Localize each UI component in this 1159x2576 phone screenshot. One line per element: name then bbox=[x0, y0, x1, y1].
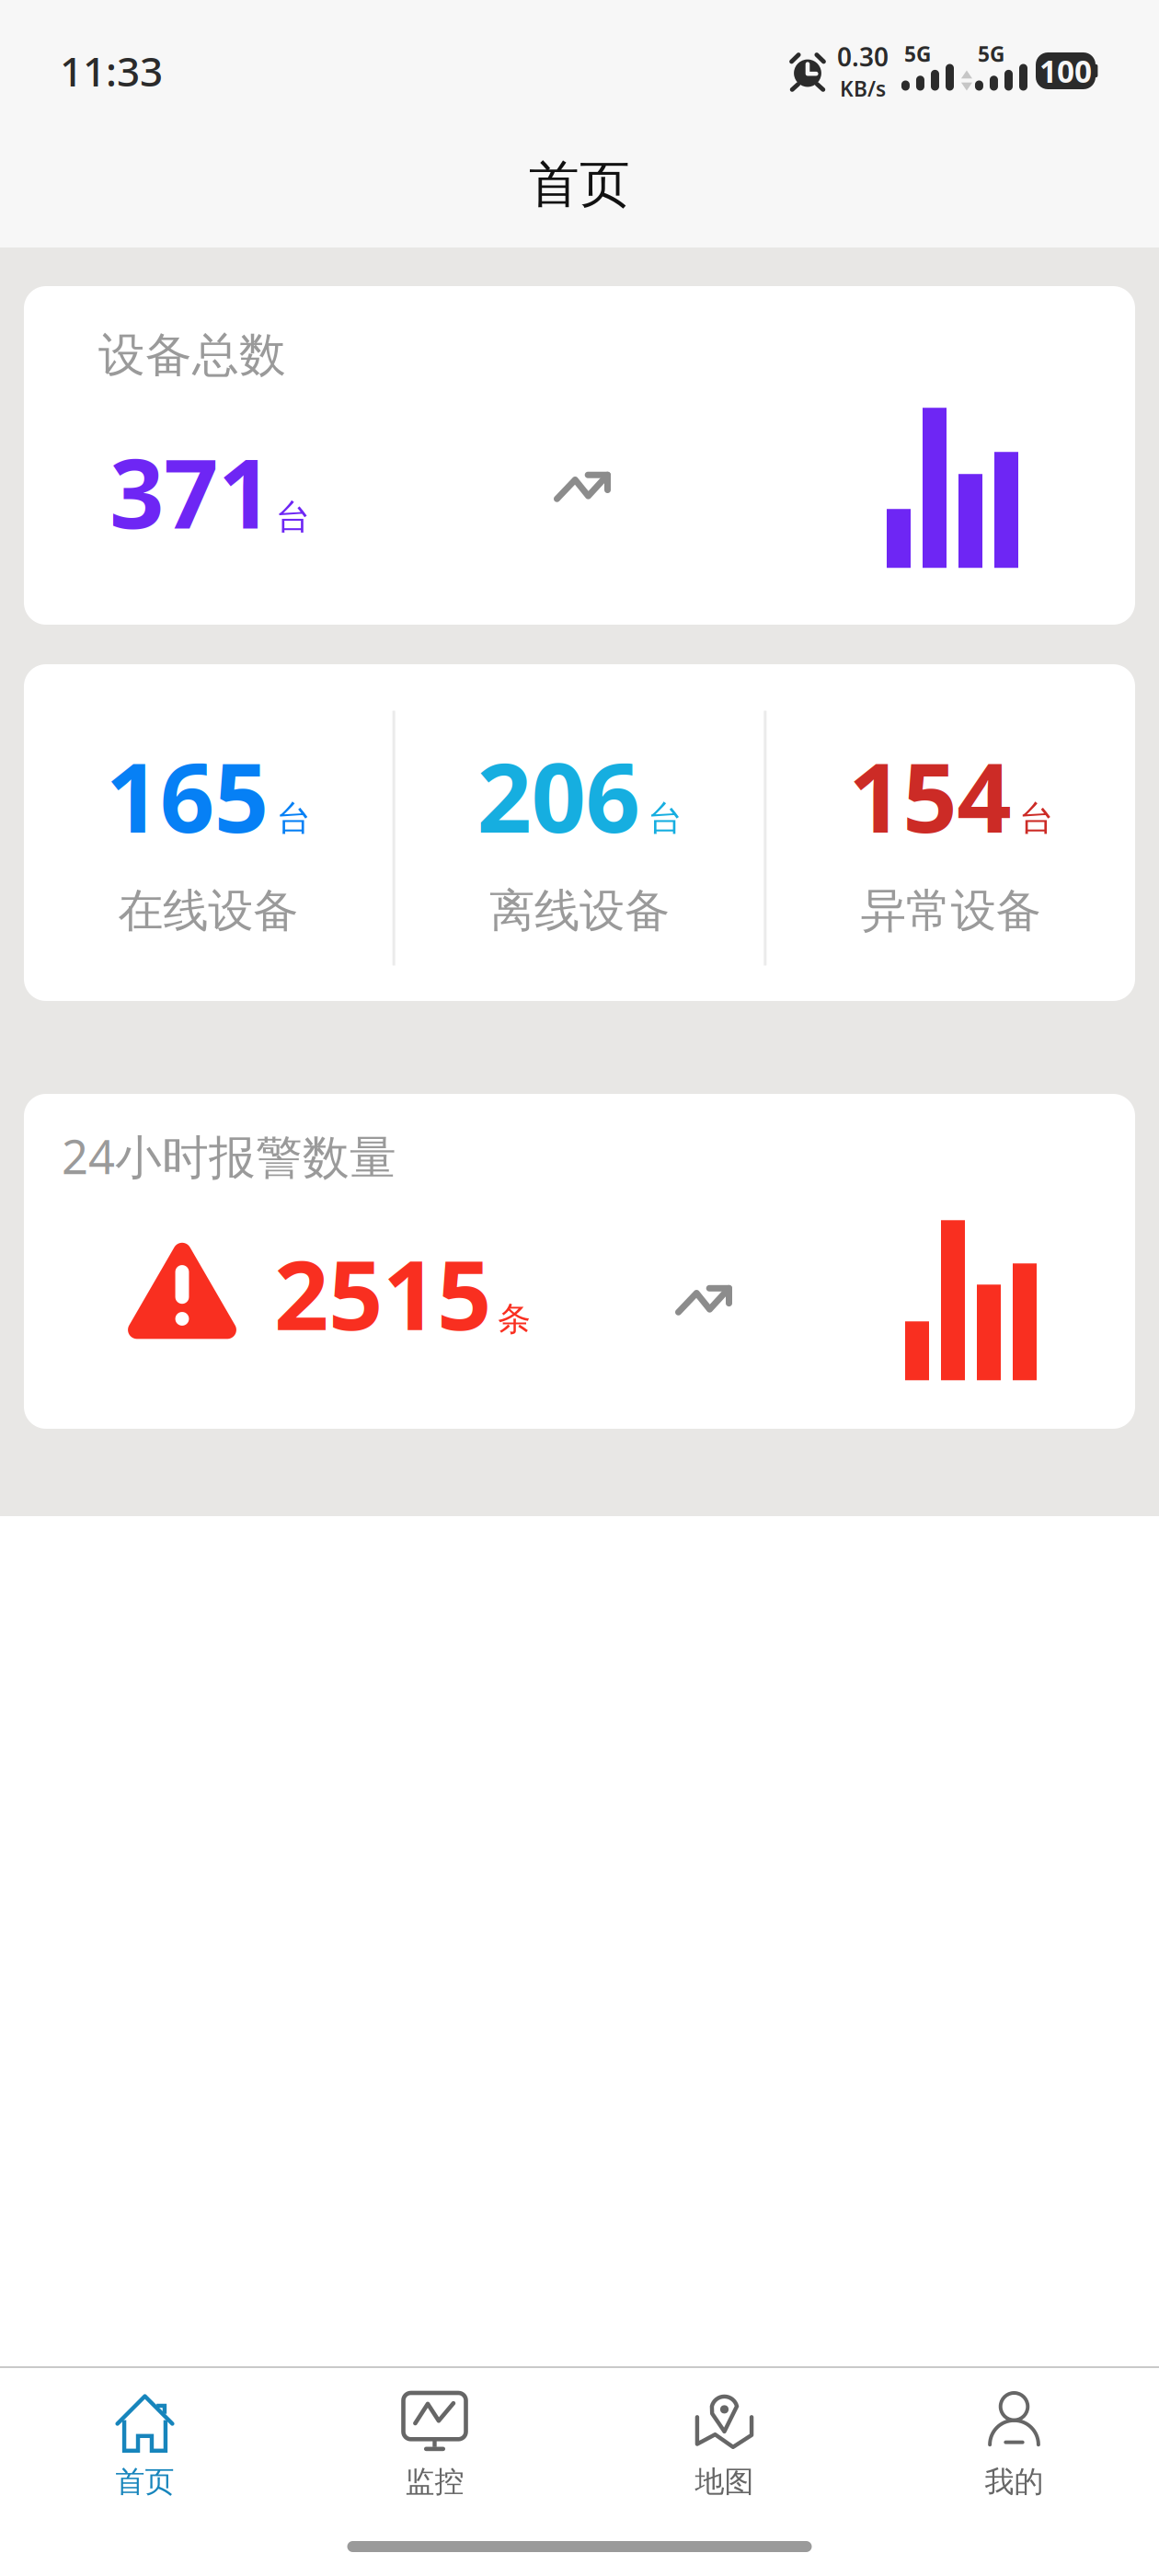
staticText: 离线设备 bbox=[489, 883, 670, 939]
staticText: 首页 bbox=[115, 2464, 174, 2500]
staticText: 5G bbox=[904, 40, 931, 68]
staticText: 台 bbox=[276, 496, 310, 538]
button[interactable]: 首页 bbox=[0, 2393, 290, 2526]
staticText: 监控 bbox=[405, 2464, 464, 2500]
button[interactable]: 监控 bbox=[290, 2393, 579, 2526]
staticText: 台 bbox=[1019, 797, 1053, 840]
button[interactable]: 地图 bbox=[579, 2393, 869, 2526]
staticText: 2515 bbox=[274, 1229, 491, 1356]
staticText: 371 bbox=[109, 428, 272, 555]
staticText: 台 bbox=[277, 797, 311, 840]
staticText: 0.30 bbox=[837, 39, 889, 74]
staticText: 24小时报警数量 bbox=[62, 1125, 396, 1187]
staticText: 台 bbox=[648, 797, 682, 840]
staticText: KB/s bbox=[840, 75, 886, 102]
staticText: 地图 bbox=[695, 2464, 754, 2500]
staticText: 首页 bbox=[529, 154, 630, 215]
staticText: 165 bbox=[106, 732, 268, 859]
staticText: 11:33 bbox=[60, 44, 163, 98]
staticText: 5G bbox=[978, 40, 1004, 68]
staticText: 我的 bbox=[985, 2464, 1044, 2500]
staticText: 154 bbox=[848, 732, 1011, 859]
staticText: 在线设备 bbox=[118, 883, 298, 939]
staticText: 条 bbox=[498, 1299, 531, 1339]
staticText: 设备总数 bbox=[98, 327, 286, 384]
staticText: 100 bbox=[1039, 51, 1092, 91]
staticText: 206 bbox=[477, 732, 640, 859]
button[interactable]: 我的 bbox=[869, 2393, 1159, 2526]
staticText: 异常设备 bbox=[861, 883, 1041, 939]
